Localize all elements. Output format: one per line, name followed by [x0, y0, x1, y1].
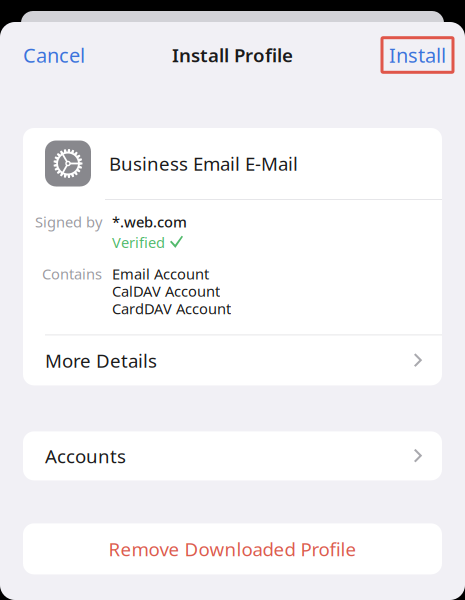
staticText: Remove Downloaded Profile — [108, 536, 356, 561]
staticText: CalDAV Account — [112, 281, 220, 301]
staticText: *.web.com — [112, 212, 187, 231]
button[interactable]: More Details — [23, 335, 442, 385]
staticText: Signed by — [35, 212, 102, 231]
staticText: Business Email E-Mail — [109, 151, 298, 176]
button[interactable]: Remove Downloaded Profile — [23, 523, 442, 574]
button[interactable]: Cancel — [0, 30, 99, 80]
staticText: CardDAV Account — [112, 299, 231, 318]
staticText: More Details — [45, 348, 157, 373]
staticText: Accounts — [45, 443, 126, 468]
staticText: Install Profile — [172, 43, 293, 67]
staticText: Verified — [112, 232, 165, 252]
button[interactable]: Accounts — [23, 431, 442, 480]
staticText: Contains — [42, 264, 102, 283]
staticText: Install — [389, 42, 446, 68]
staticText: Email Account — [112, 264, 209, 283]
staticText: Cancel — [23, 42, 85, 68]
button[interactable]: Install — [382, 28, 465, 82]
